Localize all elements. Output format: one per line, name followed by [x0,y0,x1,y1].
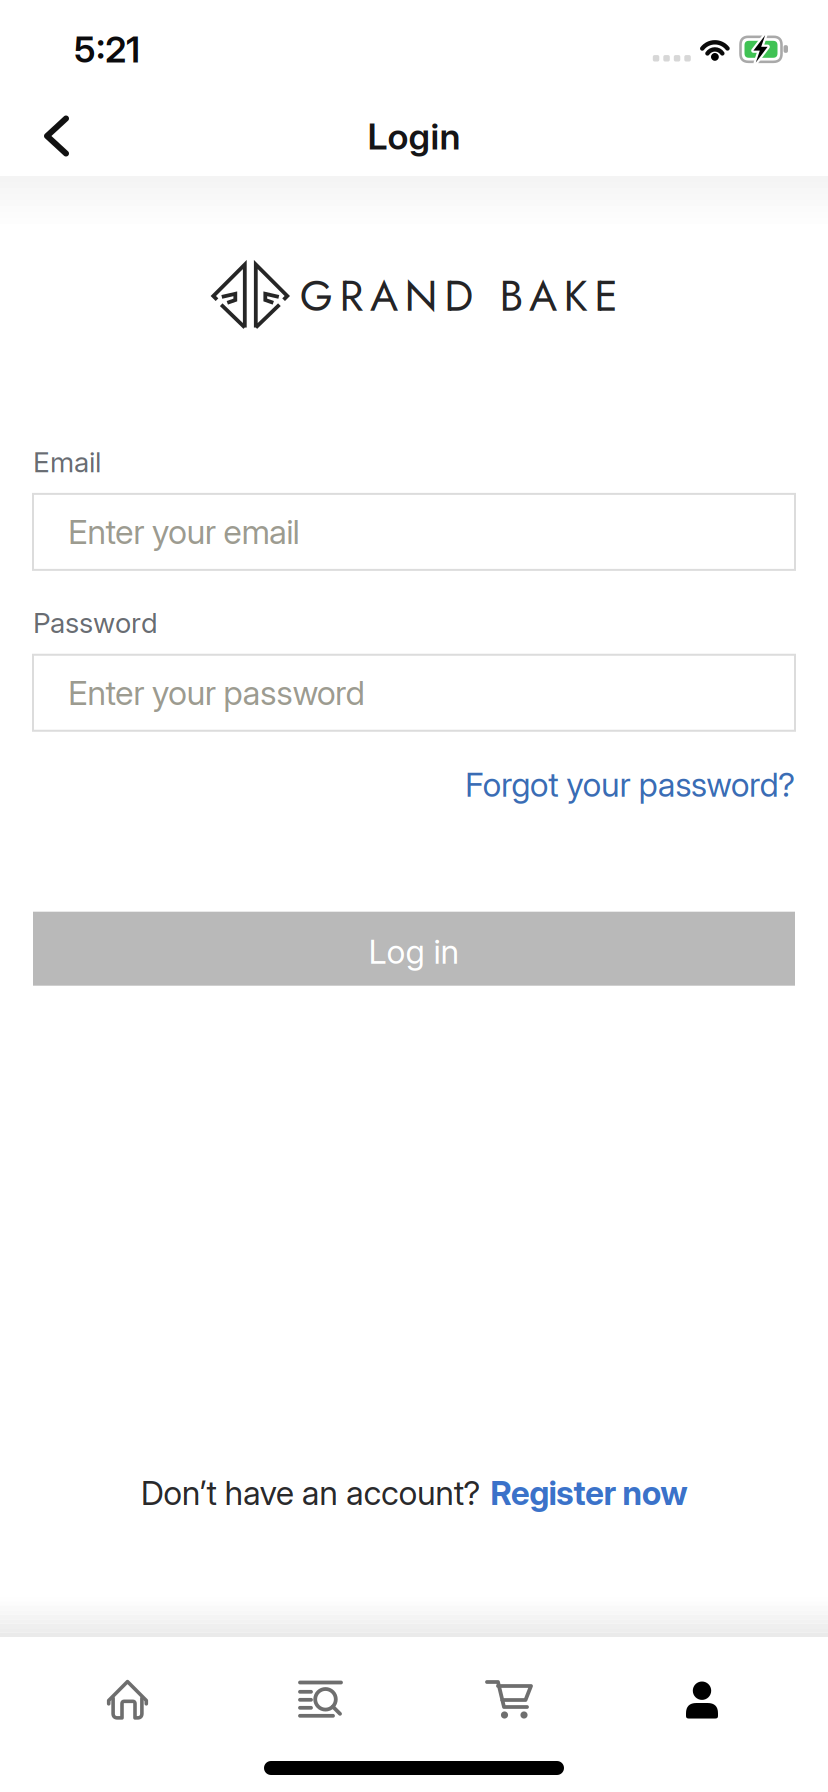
staticText: Forgot your password? [465,765,795,805]
staticText: Login [367,115,460,158]
staticText: GRAND BAKE [300,265,617,327]
button[interactable]: Log in [33,912,795,986]
button[interactable]: Back [0,101,69,163]
staticText: Password [33,606,158,640]
staticText: 5:21 [74,27,140,71]
button[interactable]: Cart [414,1675,605,1725]
staticText: Register now [490,1473,687,1513]
staticText: Log in [368,932,459,972]
staticText: Don’t have an account? [141,1473,480,1513]
textField[interactable]: Enter your email [68,512,795,552]
button[interactable]: Search [223,1675,414,1725]
button[interactable]: Profile [605,1675,796,1725]
button[interactable]: Home [32,1675,223,1725]
button[interactable]: Register now [490,1473,687,1513]
secureTextField[interactable]: Enter your password [68,673,795,713]
staticText: Enter your email [68,512,299,552]
button[interactable]: Forgot your password? [465,765,795,805]
staticText: Email [33,445,101,479]
staticText: Enter your password [68,673,364,713]
